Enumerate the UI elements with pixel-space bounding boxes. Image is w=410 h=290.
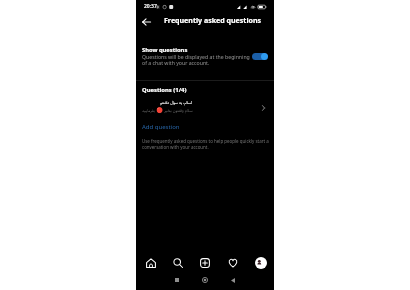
button[interactable]: Back <box>219 272 247 288</box>
button[interactable]: Back <box>135 12 157 31</box>
button[interactable]: Search <box>164 254 191 271</box>
staticText: conversation with your account. <box>142 144 209 150</box>
button[interactable]: Create <box>191 254 219 271</box>
button[interactable]: Home <box>191 272 219 288</box>
staticText: 20:37 <box>144 3 157 10</box>
button[interactable]: Show questions toggle <box>252 53 268 60</box>
button[interactable]: Activity <box>219 254 247 271</box>
staticText: Questions will be displayed at the begin… <box>142 53 251 67</box>
button[interactable]: Add question <box>142 123 180 131</box>
staticText: Show questions <box>142 46 188 54</box>
staticText: سلام وقتتون بخیر 🔴 بفرمایید <box>142 107 193 115</box>
staticText: Use frequently asked questions to help p… <box>142 138 269 144</box>
staticText: Frequently asked questions <box>164 15 262 25</box>
button[interactable]: Recents <box>163 272 191 288</box>
button[interactable]: Home <box>137 254 164 271</box>
button[interactable]: Profile <box>247 254 275 271</box>
button[interactable]: سلام، یه سوال داشتم! <box>136 95 274 113</box>
staticText: Questions (1/4) <box>142 86 187 94</box>
staticText: سلام، یه سوال داشتم! <box>160 99 193 106</box>
